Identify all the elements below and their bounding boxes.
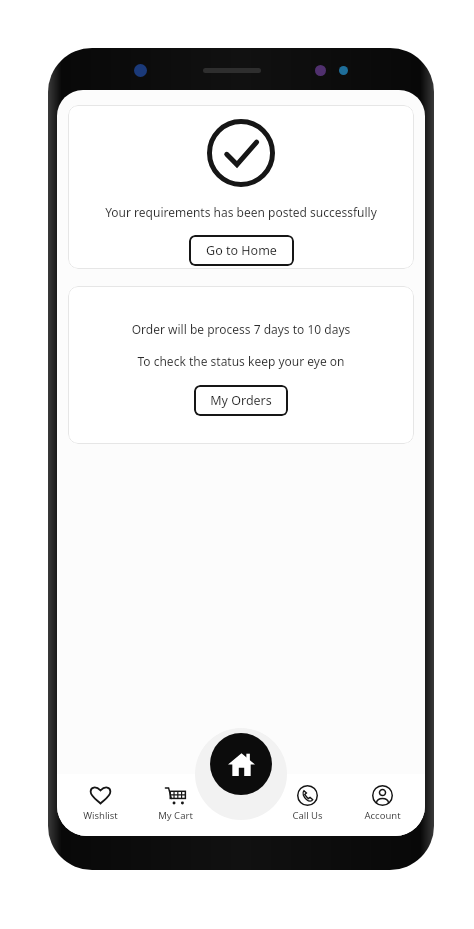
staticText: My Orders: [210, 392, 272, 409]
button[interactable]: Account: [345, 783, 419, 824]
button[interactable]: Go to Home: [189, 235, 294, 266]
staticText: Wishlist: [83, 809, 118, 822]
staticText: Account: [364, 809, 401, 822]
button[interactable]: Wishlist: [63, 783, 137, 824]
staticText: Call Us: [292, 809, 323, 822]
button[interactable]: My Orders: [194, 385, 288, 416]
staticText: To check the status keep your eye on: [68, 353, 414, 369]
staticText: Order will be process 7 days to 10 days: [68, 321, 414, 337]
button[interactable]: Home: [210, 733, 272, 795]
button[interactable]: My Cart: [138, 783, 212, 824]
button[interactable]: Call Us: [270, 783, 344, 824]
staticText: Go to Home: [206, 242, 277, 259]
staticText: Your requirements has been posted succes…: [68, 204, 414, 220]
staticText: My Cart: [158, 809, 193, 822]
